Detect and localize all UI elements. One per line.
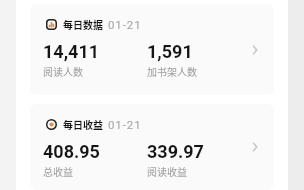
other: 查看详情 <box>249 141 261 153</box>
staticText: 408.95 <box>43 141 100 162</box>
staticText: 加书架人数 <box>147 64 197 78</box>
button[interactable]: 每日数据 <box>30 4 274 95</box>
button[interactable]: 每日收益 <box>30 104 274 190</box>
staticText: 14,411 <box>43 41 100 62</box>
staticText: 339.97 <box>147 141 204 162</box>
staticText: 每日收益 <box>63 117 103 131</box>
staticText: 阅读人数 <box>43 64 83 78</box>
staticText: 每日数据 <box>63 17 103 31</box>
staticText: 阅读收益 <box>147 164 187 178</box>
staticText: 1,591 <box>147 41 193 62</box>
other: 查看详情 <box>249 44 261 56</box>
staticText: 01-21 <box>108 18 142 31</box>
staticText: 总收益 <box>43 164 73 178</box>
staticText: 01-21 <box>108 118 142 131</box>
